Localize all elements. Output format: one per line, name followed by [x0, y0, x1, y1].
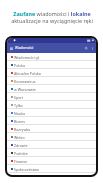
button[interactable]: Wiadomości gł.: [7, 53, 96, 61]
button[interactable]: Podróże: [7, 149, 96, 157]
button[interactable]: Koronawirus: [7, 77, 96, 85]
button[interactable]: Biznes: [7, 117, 96, 125]
staticText: Koronawirus: [14, 79, 36, 84]
staticText: Biznes: [14, 119, 25, 124]
staticText: Aktualne Polska: [14, 71, 41, 76]
button[interactable]: More options: [91, 47, 94, 50]
staticText: Zaufane wiadomości i lokalne: [13, 10, 91, 17]
staticText: Zdrowie: [14, 143, 28, 148]
staticText: Wiadomości: [15, 46, 34, 50]
staticText: Tylko: [14, 103, 23, 108]
button[interactable]: Search: [85, 47, 88, 50]
button[interactable]: Polska: [7, 61, 96, 69]
button[interactable]: Zdrowie: [7, 141, 96, 149]
button[interactable]: Finanse: [7, 157, 96, 165]
button[interactable]: Sport: [7, 93, 96, 101]
button[interactable]: Wideo: [7, 133, 96, 141]
button[interactable]: w Warszawie: [7, 85, 96, 93]
button[interactable]: Menu: [10, 47, 13, 50]
staticText: Nauka: [14, 111, 25, 116]
staticText: Wideo: [14, 135, 25, 140]
staticText: Polska: [14, 63, 25, 68]
button[interactable]: Tylko: [7, 101, 96, 109]
button[interactable]: Społeczeństwo: [7, 165, 96, 173]
button[interactable]: Nauka: [7, 109, 96, 117]
staticText: Finanse: [14, 159, 27, 164]
staticText: Podróże: [14, 151, 28, 156]
staticText: Społeczeństwo: [14, 167, 39, 172]
staticText: Rozrywka: [14, 127, 31, 132]
button[interactable]: Rozrywka: [7, 125, 96, 133]
staticText: aktualizacje na wyciągnięcie ręki: [11, 17, 93, 24]
staticText: Sport: [14, 95, 24, 100]
button[interactable]: Aktualne Polska: [7, 69, 96, 77]
staticText: Wiadomości gł.: [14, 55, 40, 60]
staticText: w Warszawie: [14, 87, 36, 92]
